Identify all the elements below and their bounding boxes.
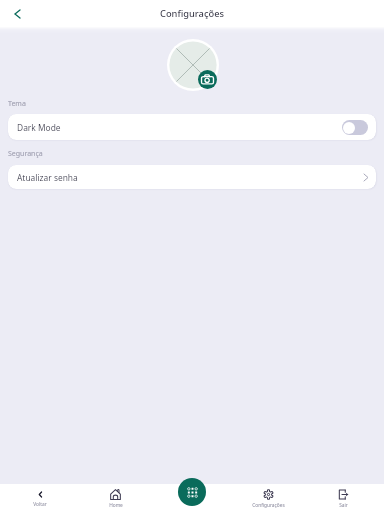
button[interactable]: Sair: [305, 485, 382, 512]
button[interactable]: Atualizar senha: [8, 165, 376, 189]
button[interactable]: Apps: [178, 478, 206, 506]
staticText: Configurações: [160, 7, 224, 20]
button[interactable]: Configurações: [230, 485, 307, 512]
staticText: Segurança: [8, 149, 43, 159]
staticText: Atualizar senha: [17, 172, 78, 183]
staticText: Tema: [8, 99, 26, 109]
staticText: Dark Mode: [17, 122, 61, 133]
staticText: Home: [109, 502, 123, 509]
staticText: Configurações: [252, 502, 285, 509]
button[interactable]: Voltar: [7, 4, 27, 24]
staticText: Voltar: [33, 501, 47, 508]
staticText: Sair: [339, 502, 348, 509]
button[interactable]: Alterar foto: [198, 70, 217, 89]
button[interactable]: Dark Mode: [8, 114, 376, 140]
button[interactable]: Home: [77, 485, 154, 512]
button[interactable]: Voltar: [2, 485, 78, 512]
